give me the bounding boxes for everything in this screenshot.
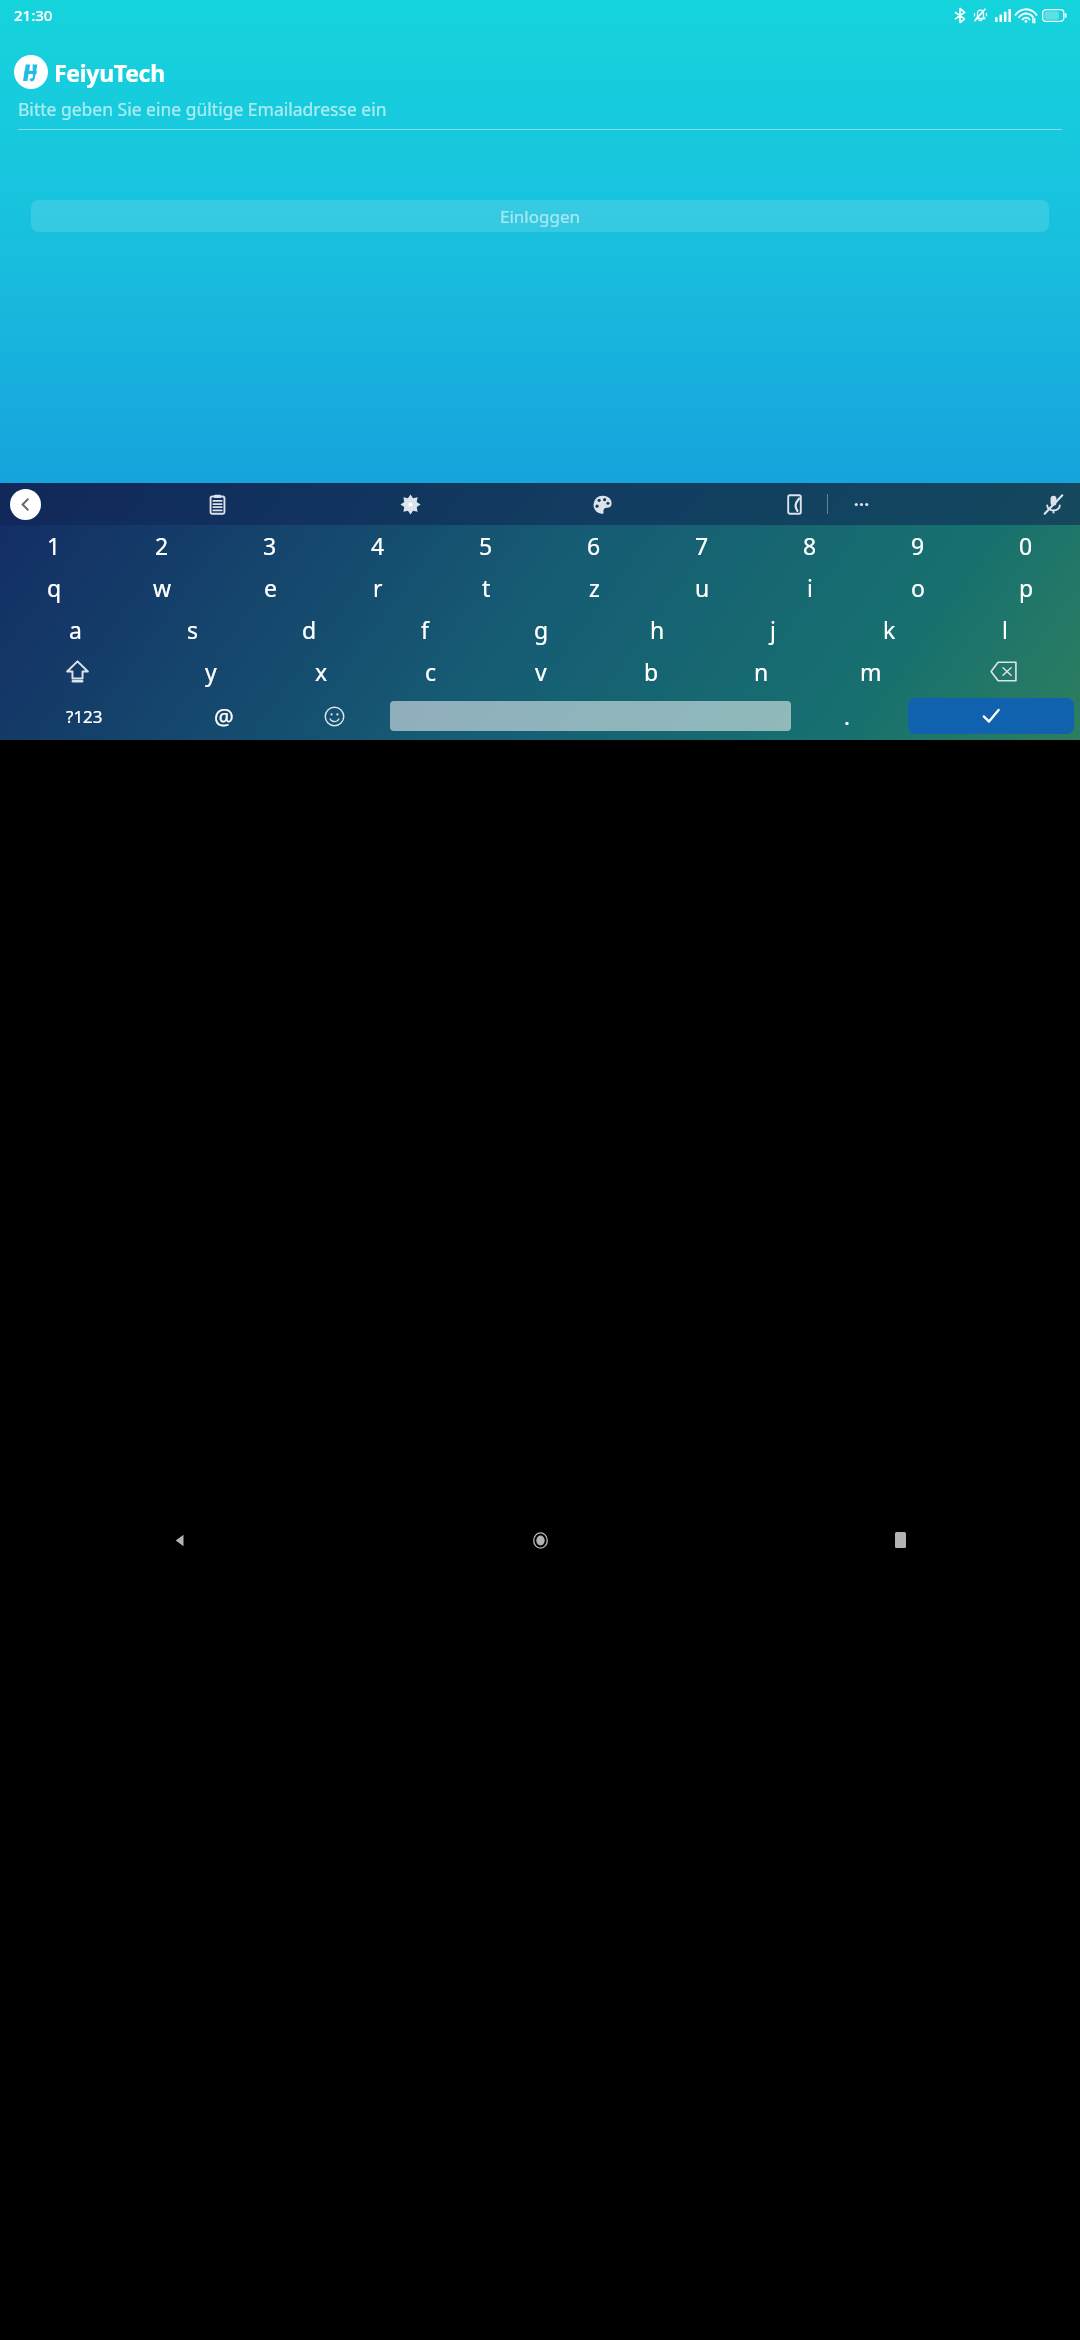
button[interactable]: r	[324, 566, 432, 608]
button[interactable]: s	[134, 608, 251, 650]
button[interactable]: e	[216, 566, 324, 608]
button[interactable]: o	[864, 566, 972, 608]
staticText: u	[695, 572, 710, 603]
button[interactable]: l	[947, 608, 1063, 650]
staticText: FeiyuTech	[54, 57, 165, 88]
staticText: 21:30	[14, 5, 53, 25]
staticText: s	[187, 614, 199, 645]
staticText: 2	[155, 530, 169, 561]
button[interactable]: q	[0, 566, 108, 608]
staticText: g	[534, 614, 549, 645]
staticText: a	[69, 614, 82, 645]
button[interactable]: h	[599, 608, 715, 650]
button[interactable]: Shift	[0, 650, 155, 692]
staticText: d	[302, 614, 317, 645]
button[interactable]: u	[648, 566, 756, 608]
button[interactable]: Bitte geben Sie eine gültige Emailadress…	[18, 97, 1062, 130]
staticText: 5	[479, 530, 493, 561]
button[interactable]: z	[540, 566, 648, 608]
staticText: t	[482, 572, 491, 603]
button[interactable]: .	[791, 692, 902, 740]
button[interactable]: 4	[324, 525, 432, 566]
button[interactable]: Voice input off	[1036, 487, 1070, 521]
staticText: @	[214, 701, 234, 731]
button[interactable]: w	[108, 566, 216, 608]
button[interactable]: 0	[972, 525, 1080, 566]
button[interactable]: Theme	[585, 487, 619, 521]
button[interactable]: g	[483, 608, 599, 650]
staticText: Einloggen	[500, 205, 581, 228]
button[interactable]: c	[376, 650, 486, 692]
staticText: z	[589, 572, 600, 603]
staticText: h	[650, 614, 665, 645]
staticText: 1	[47, 530, 61, 561]
button[interactable]: Handwriting	[777, 487, 811, 521]
staticText: f	[421, 614, 429, 645]
staticText: ?123	[66, 705, 103, 728]
staticText: l	[1002, 614, 1008, 645]
staticText: y	[205, 656, 217, 687]
staticText: 4	[371, 530, 385, 561]
staticText: j	[770, 614, 776, 645]
button[interactable]: Einloggen	[31, 200, 1049, 232]
button[interactable]: t	[432, 566, 540, 608]
button[interactable]: FeiyuTech	[14, 55, 165, 89]
button[interactable]: a	[17, 608, 134, 650]
staticText: 3	[263, 530, 277, 561]
button[interactable]: b	[596, 650, 706, 692]
button[interactable]: 9	[864, 525, 972, 566]
button[interactable]: m	[816, 650, 926, 692]
button[interactable]: d	[251, 608, 367, 650]
button[interactable]: Emoji	[279, 692, 390, 740]
button[interactable]: 3	[216, 525, 324, 566]
button[interactable]: Enter	[908, 698, 1074, 734]
staticText: n	[754, 656, 769, 687]
button[interactable]: i	[756, 566, 864, 608]
button[interactable]: Clipboard	[200, 487, 234, 521]
staticText: b	[644, 656, 659, 687]
button[interactable]: k	[831, 608, 947, 650]
staticText: w	[153, 572, 172, 603]
button[interactable]: Settings	[393, 487, 427, 521]
staticText: 8	[803, 530, 817, 561]
button[interactable]: v	[486, 650, 596, 692]
button[interactable]: 2	[108, 525, 216, 566]
button[interactable]: x	[266, 650, 376, 692]
staticText: 6	[587, 530, 601, 561]
button[interactable]: 8	[756, 525, 864, 566]
staticText: c	[425, 656, 437, 687]
staticText: 9	[911, 530, 925, 561]
staticText: i	[807, 572, 813, 603]
staticText: m	[860, 656, 882, 687]
staticText: q	[47, 572, 62, 603]
button[interactable]: Space	[390, 701, 791, 731]
button[interactable]: Backspace	[926, 650, 1080, 692]
button[interactable]: 1	[0, 525, 108, 566]
button[interactable]: f	[367, 608, 483, 650]
button[interactable]: ?123	[0, 692, 168, 740]
staticText: e	[264, 572, 277, 603]
button[interactable]: 7	[648, 525, 756, 566]
button[interactable]: Hide keyboard	[10, 489, 41, 520]
staticText: x	[315, 656, 328, 687]
button[interactable]: More options	[844, 487, 878, 521]
staticText: k	[883, 614, 896, 645]
button[interactable]: p	[972, 566, 1080, 608]
staticText: .	[844, 701, 850, 731]
staticText: o	[911, 572, 925, 603]
staticText: p	[1019, 572, 1034, 603]
button[interactable]: 6	[540, 525, 648, 566]
staticText: Bitte geben Sie eine gültige Emailadress…	[18, 97, 387, 121]
staticText: 0	[1019, 530, 1033, 561]
button[interactable]: j	[715, 608, 831, 650]
staticText: v	[535, 656, 547, 687]
button[interactable]: n	[706, 650, 816, 692]
button[interactable]: Recent apps	[720, 740, 1080, 2340]
staticText: 7	[695, 530, 709, 561]
button[interactable]: y	[155, 650, 266, 692]
staticText: r	[373, 572, 383, 603]
button[interactable]: @	[168, 692, 279, 740]
button[interactable]: 5	[432, 525, 540, 566]
